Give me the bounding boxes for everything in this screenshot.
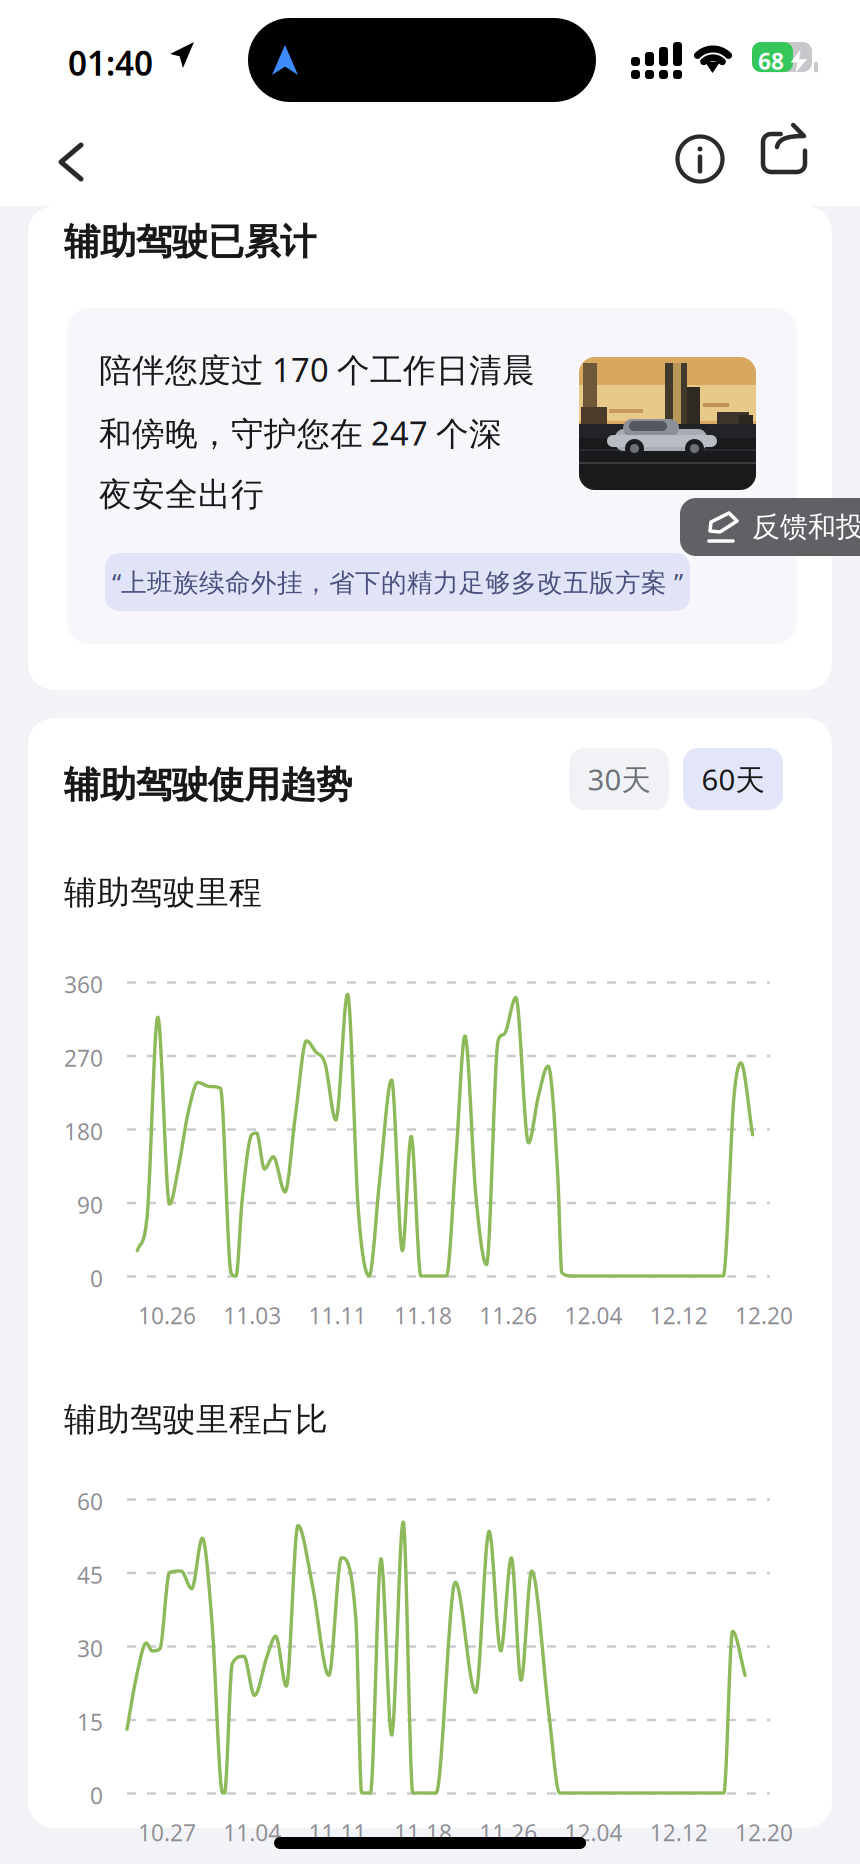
staticText: 12.12 — [650, 1300, 708, 1331]
staticText: 辅助驾驶里程 — [64, 872, 262, 913]
staticText: 11.11 — [309, 1300, 367, 1331]
staticText: 10.26 — [138, 1300, 196, 1331]
staticText: 11.18 — [394, 1300, 452, 1331]
button[interactable]: 30天 — [569, 748, 669, 810]
staticText: 12.20 — [735, 1817, 793, 1848]
staticText: 反馈和投诉 — [752, 509, 860, 545]
staticText: 12.12 — [650, 1817, 708, 1848]
staticText: 11.26 — [479, 1300, 537, 1331]
staticText: 180 — [64, 1116, 103, 1147]
staticText: 90 — [77, 1189, 103, 1220]
button[interactable]: Back — [35, 126, 107, 198]
staticText: 01:40 — [68, 40, 153, 85]
staticText: 0 — [90, 1263, 103, 1294]
staticText: 12.04 — [564, 1300, 622, 1331]
staticText: 12.20 — [735, 1300, 793, 1331]
staticText: 68 — [758, 46, 784, 76]
button[interactable]: Information — [664, 123, 736, 195]
staticText: 11.03 — [223, 1300, 281, 1331]
staticText: 辅助驾驶使用趋势 — [64, 762, 352, 808]
staticText: 360 — [64, 969, 103, 1000]
button[interactable]: 反馈和投诉 — [680, 498, 860, 556]
staticText: “上班族续命外挂，省下的精力足够多改五版方案 ” — [112, 565, 683, 599]
button[interactable]: Share — [747, 106, 817, 176]
staticText: 60天 — [701, 759, 764, 799]
staticText: 11.18 — [394, 1817, 452, 1848]
staticText: 11.11 — [309, 1817, 367, 1848]
staticText: 陪伴您度过 170 个工作日清晨 和傍晚，守护您在 247 个深 夜安全出行 — [99, 347, 535, 515]
staticText: 10.27 — [138, 1817, 196, 1848]
button[interactable]: 60天 — [683, 748, 783, 810]
staticText: 11.26 — [479, 1817, 537, 1848]
staticText: 60 — [77, 1486, 103, 1517]
staticText: 15 — [77, 1706, 103, 1737]
staticText: 辅助驾驶已累计 — [64, 219, 316, 265]
staticText: 45 — [77, 1559, 103, 1590]
staticText: 辅助驾驶里程占比 — [64, 1399, 328, 1440]
staticText: 11.04 — [223, 1817, 281, 1848]
staticText: 12.04 — [564, 1817, 622, 1848]
staticText: 30 — [77, 1633, 103, 1664]
staticText: 30天 — [587, 759, 650, 799]
staticText: 270 — [64, 1042, 103, 1073]
staticText: 0 — [90, 1780, 103, 1811]
